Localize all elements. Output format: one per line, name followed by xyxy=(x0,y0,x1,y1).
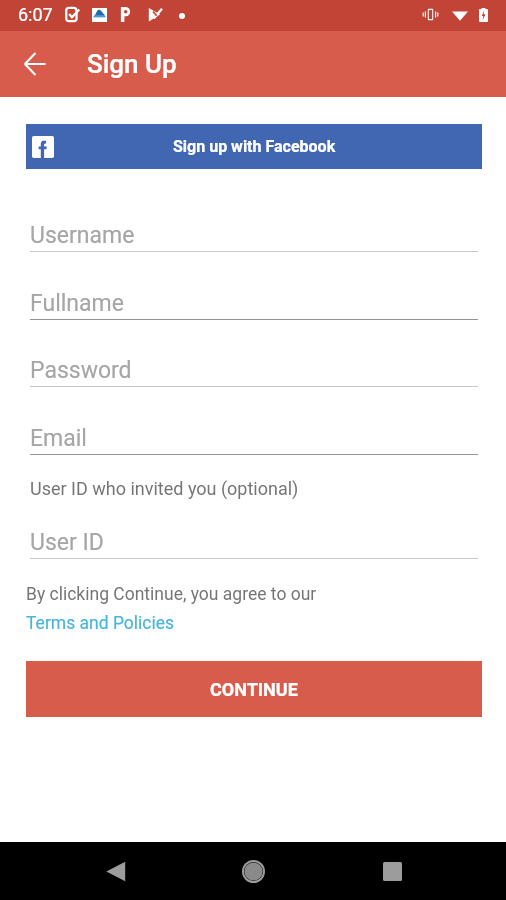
button[interactable]: Home xyxy=(229,847,277,895)
staticText: Sign Up xyxy=(87,49,177,79)
staticText: Password xyxy=(30,357,132,384)
staticText: Fullname xyxy=(30,290,124,317)
button[interactable]: Recent apps xyxy=(368,847,416,895)
staticText: User ID xyxy=(30,529,104,556)
button[interactable]: Terms and Policies xyxy=(26,613,175,634)
staticText: Username xyxy=(30,222,135,249)
button[interactable]: CONTINUE xyxy=(26,661,482,717)
staticText: By clicking Continue, you agree to our xyxy=(26,584,317,605)
staticText: 6:07 xyxy=(18,4,53,25)
staticText: Sign up with Facebook xyxy=(173,137,336,156)
staticText: CONTINUE xyxy=(210,679,298,700)
staticText: User ID who invited you (optional) xyxy=(30,478,299,499)
button[interactable]: Sign up with Facebook xyxy=(26,124,482,169)
button[interactable]: Back xyxy=(91,847,139,895)
staticText: Email xyxy=(30,425,87,452)
button[interactable]: Back xyxy=(11,40,59,88)
